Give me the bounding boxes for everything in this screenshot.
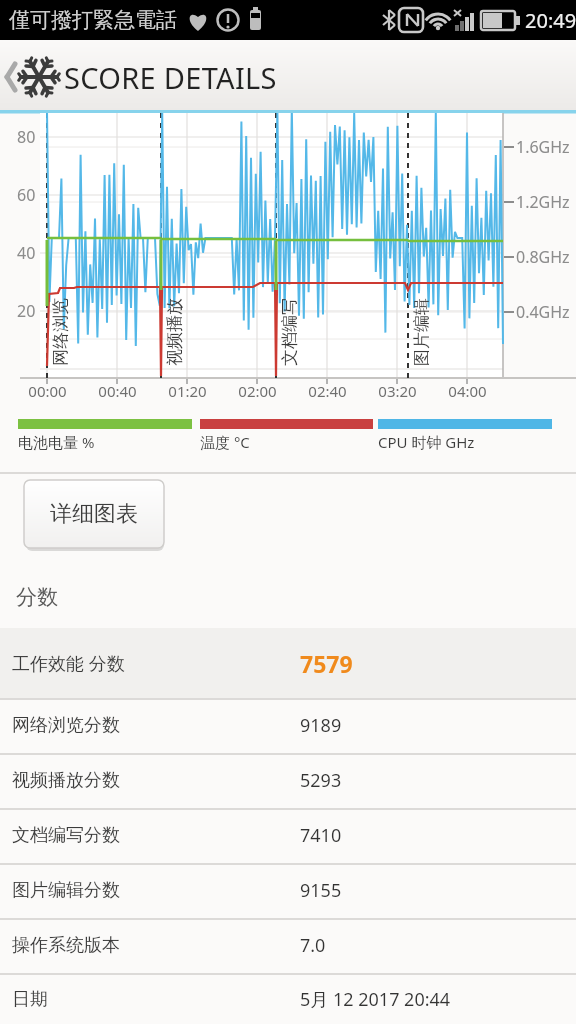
staticText: 7410 (300, 823, 342, 848)
staticText: 03:20 (378, 381, 417, 399)
button[interactable]: 图片编辑分数 (0, 863, 576, 918)
staticText: 操作系统版本 (12, 934, 120, 957)
staticText: 工作效能 分数 (12, 651, 125, 676)
staticText: 图片编辑 (411, 298, 432, 366)
staticText: 文档编写分数 (12, 824, 120, 847)
staticText: 文档编写 (279, 298, 300, 366)
staticText: 04:00 (448, 381, 487, 399)
staticText: 详细图表 (50, 500, 138, 528)
staticText: 20:49 (525, 7, 576, 34)
staticText: 00:00 (28, 381, 67, 399)
staticText: 电池电量 % (18, 432, 95, 452)
staticText: 视频播放分数 (12, 769, 120, 792)
staticText: 网络浏览 (50, 298, 71, 366)
staticText: 僅可撥打緊急電話 (9, 7, 177, 33)
staticText: 0.4GHz (516, 301, 570, 323)
staticText: 图片编辑分数 (12, 879, 120, 902)
staticText: 9155 (300, 878, 342, 903)
staticText: 5月 12 2017 20:44 (300, 987, 451, 1012)
staticText: 网络浏览分数 (12, 714, 120, 737)
staticText: 视频播放 (164, 298, 185, 366)
staticText: 1.6GHz (516, 136, 570, 158)
button[interactable] (0, 48, 58, 106)
staticText: 80 (17, 126, 36, 148)
staticText: 7.0 (300, 933, 326, 958)
staticText: 1.2GHz (516, 191, 570, 213)
staticText: 9189 (300, 713, 342, 738)
staticText: 00:40 (98, 381, 137, 399)
button[interactable]: 操作系统版本 (0, 918, 576, 973)
staticText: 0.8GHz (516, 246, 570, 268)
staticText: 分数 (16, 584, 58, 610)
button[interactable]: 文档编写分数 (0, 808, 576, 863)
staticText: CPU 时钟 GHz (378, 432, 475, 452)
button[interactable]: 工作效能 分数 (0, 628, 576, 698)
staticText: 01:20 (168, 381, 207, 399)
staticText: 温度 °C (200, 432, 250, 452)
staticText: 40 (17, 242, 36, 264)
staticText: 5293 (300, 768, 342, 793)
button[interactable]: 详细图表 (24, 480, 164, 548)
staticText: SCORE DETAILS (64, 58, 277, 97)
staticText: 02:00 (238, 381, 277, 399)
button[interactable]: 网络浏览分数 (0, 698, 576, 753)
staticText: 日期 (12, 988, 48, 1011)
button[interactable]: 视频播放分数 (0, 753, 576, 808)
staticText: 60 (17, 184, 36, 206)
staticText: 02:40 (308, 381, 347, 399)
staticText: 20 (17, 300, 36, 322)
button[interactable]: 日期 (0, 973, 576, 1024)
staticText: 7579 (300, 648, 353, 679)
